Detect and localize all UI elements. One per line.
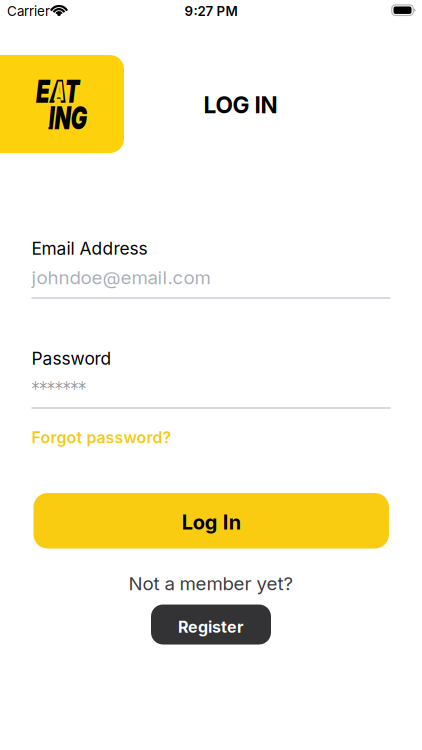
staticText: johndoe@email.com (31, 266, 210, 288)
staticText: Log In (182, 510, 241, 534)
staticText: Password (31, 348, 111, 369)
staticText: Email Address (31, 238, 147, 259)
button[interactable]: Log In (33, 493, 389, 548)
staticText: LOG IN (203, 92, 277, 118)
staticText: I (44, 99, 53, 137)
staticText: EAT (26, 72, 89, 110)
staticText: 9:27 PM (184, 3, 237, 19)
button[interactable]: Forgot password? (31, 428, 171, 447)
staticText: ING (39, 99, 96, 136)
staticText: A (46, 73, 71, 110)
staticText: Not a member yet? (128, 572, 293, 594)
staticText: Carrier (7, 3, 50, 19)
staticText: ******* (31, 376, 101, 400)
button[interactable]: Register (151, 604, 271, 644)
staticText: Register (178, 618, 244, 636)
staticText: Forgot password? (31, 428, 171, 447)
